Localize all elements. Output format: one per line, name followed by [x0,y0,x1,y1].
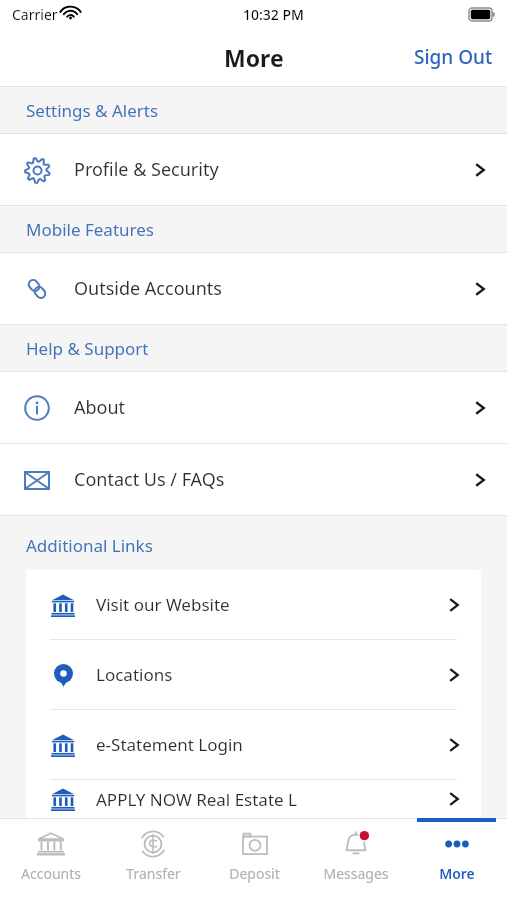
staticText: Visit our Website [96,593,230,616]
button[interactable]: Locations [26,640,481,709]
other: More [442,840,472,848]
staticText: Additional Links [26,534,153,557]
button[interactable]: Deposit [204,818,305,900]
button[interactable]: APPLY NOW Real Estate L [26,780,481,818]
staticText: More [439,864,475,883]
staticText: Accounts [21,864,81,883]
staticText: Contact Us / FAQs [74,467,225,492]
button[interactable]: Messages [305,818,406,900]
staticText: Messages [323,864,389,883]
staticText: Sign Out [414,44,493,70]
staticText: Locations [96,663,173,686]
button[interactable]: Visit our Website [26,570,481,639]
other: Messages [342,831,370,857]
button[interactable]: Accounts [0,818,102,900]
staticText: 10:32 PM [243,5,304,24]
staticText: e-Statement Login [96,733,243,756]
staticText: About [74,395,126,420]
staticText: Help & Support [26,337,149,360]
button[interactable]: Transfer [102,818,204,900]
staticText: More [224,42,284,73]
staticText: Transfer [126,864,181,883]
button[interactable]: Profile & Security [0,134,507,205]
other: Accounts [37,832,65,856]
button[interactable]: Sign Out [400,36,507,78]
button[interactable]: e-Statement Login [26,710,481,779]
staticText: Carrier [12,5,58,24]
staticText: Mobile Features [26,218,154,241]
staticText: Deposit [229,864,280,883]
other: Deposit [242,833,268,855]
other: Transfer [139,830,167,858]
staticText: Profile & Security [74,157,219,182]
button[interactable]: More [406,818,507,900]
button[interactable]: Outside Accounts [0,253,507,324]
staticText: Settings & Alerts [26,99,159,122]
staticText: Outside Accounts [74,276,222,301]
button[interactable]: Contact Us / FAQs [0,444,507,515]
staticText: APPLY NOW Real Estate L [96,788,297,811]
button[interactable]: About [0,372,507,443]
